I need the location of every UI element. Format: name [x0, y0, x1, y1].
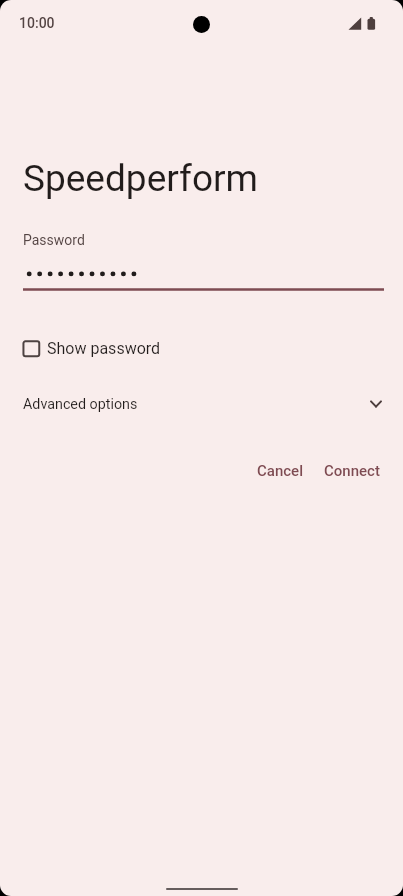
staticText: Cancel	[257, 462, 304, 480]
button[interactable]: Password input field	[23, 263, 384, 291]
button[interactable]: Advanced options	[0, 386, 403, 422]
staticText: Show password	[47, 339, 161, 358]
other: Mobile signal and battery status	[347, 14, 379, 32]
staticText: 10:00	[19, 15, 55, 31]
staticText: Advanced options	[23, 396, 138, 413]
staticText: Speedperform	[23, 157, 259, 200]
button[interactable]: Cancel	[247, 452, 314, 490]
button[interactable]: Connect	[314, 452, 390, 490]
button[interactable]: Show password	[12, 331, 171, 366]
staticText: Password	[23, 232, 85, 248]
staticText: Connect	[324, 462, 380, 480]
